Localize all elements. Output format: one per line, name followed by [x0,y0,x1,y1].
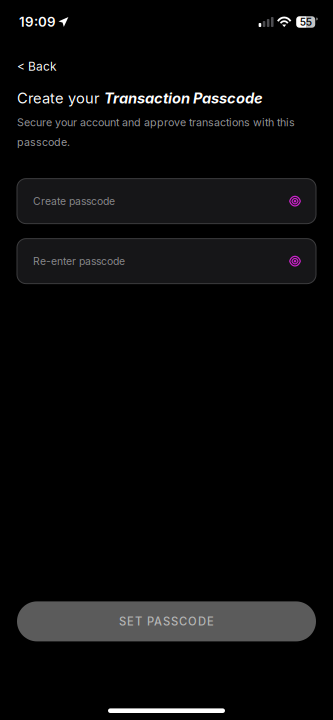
button[interactable]: SET PASSCODE [0,601,333,641]
staticText: passcode. [17,136,70,149]
staticText: Re-enter passcode [33,255,125,267]
button[interactable]: < Back [0,44,69,80]
staticText: 55 [300,16,312,28]
staticText: Secure your account and approve transact… [17,116,295,129]
staticText: Create your Transaction Passcode [17,89,263,107]
staticText: SET PASSCODE [119,615,214,628]
button[interactable]: Create passcode [0,179,333,224]
staticText: Create passcode [33,195,115,207]
button[interactable]: Re-enter passcode [0,239,333,284]
staticText: < Back [17,59,57,73]
staticText: 19:09 [19,14,56,30]
